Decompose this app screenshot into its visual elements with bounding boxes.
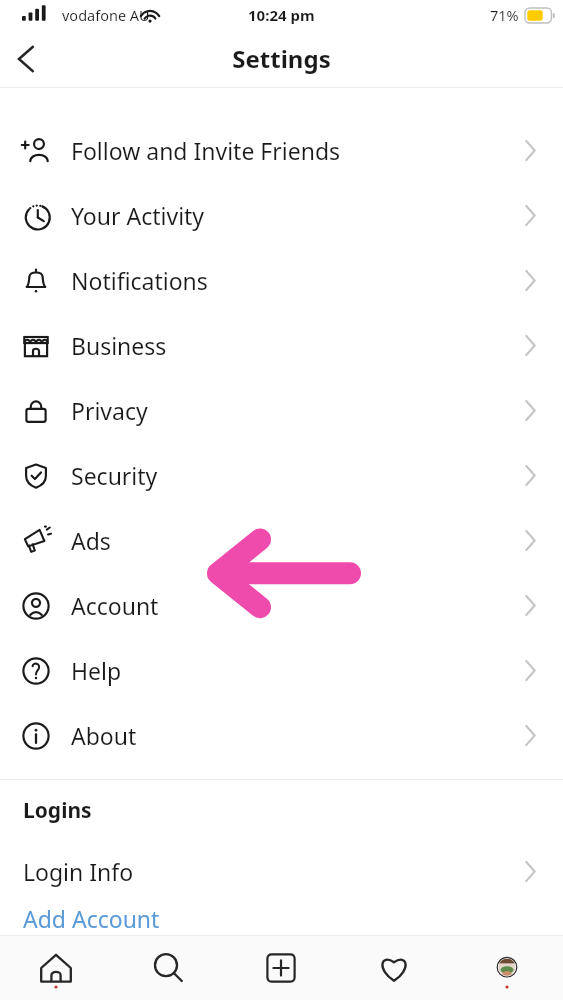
staticText: Security (71, 460, 525, 491)
button[interactable]: Help (0, 638, 563, 703)
button[interactable]: Search (112, 936, 224, 1000)
button[interactable]: Your Activity (0, 183, 563, 248)
staticText: Help (71, 655, 525, 686)
staticText: About (71, 720, 525, 751)
button[interactable]: About (0, 703, 563, 768)
staticText: Add Account (23, 903, 160, 934)
staticText: 10:24 pm (248, 5, 315, 25)
button[interactable]: Profile (450, 936, 563, 1000)
staticText: Ads (71, 525, 525, 556)
staticText: Login Info (23, 856, 525, 887)
staticText: Your Activity (71, 200, 525, 231)
staticText: Notifications (71, 265, 525, 296)
button[interactable]: Notifications (0, 248, 563, 313)
staticText: Logins (23, 796, 92, 825)
button[interactable]: Home (0, 936, 112, 1000)
button[interactable]: Back (0, 32, 54, 86)
staticText: 71% (490, 5, 519, 25)
button[interactable]: Add Account (0, 902, 563, 935)
button[interactable]: Security (0, 443, 563, 508)
staticText: Account (71, 590, 525, 621)
staticText: Business (71, 330, 525, 361)
staticText: Privacy (71, 395, 525, 426)
button[interactable]: Follow and Invite Friends (0, 118, 563, 183)
button[interactable]: Account (0, 573, 563, 638)
button[interactable]: Business (0, 313, 563, 378)
button[interactable]: Create (224, 936, 337, 1000)
staticText: vodafone AU (62, 5, 150, 25)
button[interactable]: Activity (337, 936, 450, 1000)
button[interactable]: Ads (0, 508, 563, 573)
staticText: Settings (232, 42, 331, 75)
button[interactable]: Login Info (0, 840, 563, 902)
staticText: Follow and Invite Friends (71, 135, 525, 166)
button[interactable]: Privacy (0, 378, 563, 443)
